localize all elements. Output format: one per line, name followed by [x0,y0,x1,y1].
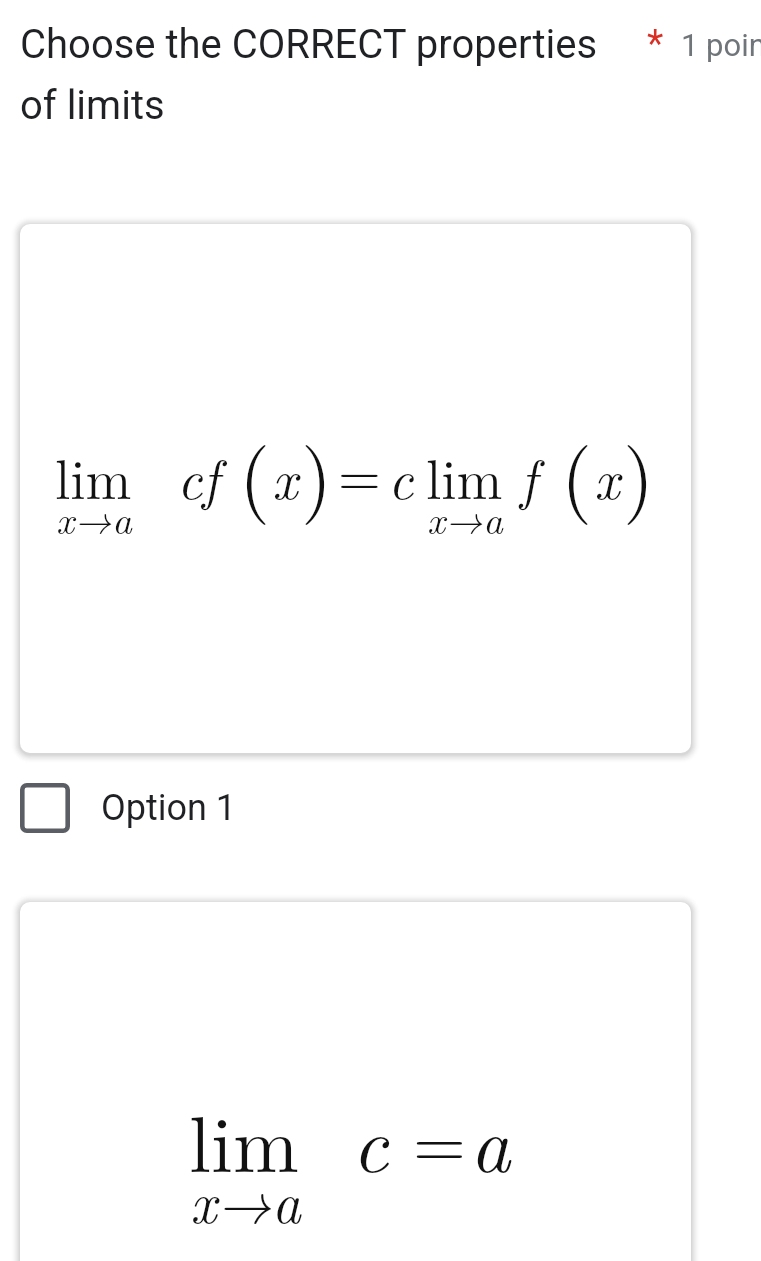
staticText: lim [189,1083,299,1195]
staticText: x [272,437,298,515]
other: Option 1 checkbox [20,783,70,833]
staticText: ( [561,415,593,528]
staticText: = [413,1090,466,1186]
staticText: = [338,433,381,511]
staticText: lim [55,437,132,515]
button[interactable]: Answer image 1 [12,216,699,761]
staticText: lim [426,437,503,515]
button[interactable]: Option 1 checkbox [0,777,761,839]
button[interactable]: Answer image 2 [12,894,699,1261]
staticText: cf [177,437,220,515]
staticText: Choose the CORRECT properties of limits [20,21,625,129]
staticText: x→a [56,490,132,545]
staticText: c [388,437,414,515]
staticText: ( [239,415,271,528]
staticText: x→a [190,1159,301,1240]
staticText: c [352,1083,389,1195]
staticText: Option 1 [101,787,237,829]
staticText: * [647,22,664,67]
staticText: a [470,1083,511,1195]
staticText: ) [623,415,655,528]
staticText: 1 point [681,27,761,63]
staticText: f [520,437,537,515]
staticText: x [594,437,620,515]
staticText: ) [301,415,333,528]
staticText: x→a [427,490,503,545]
